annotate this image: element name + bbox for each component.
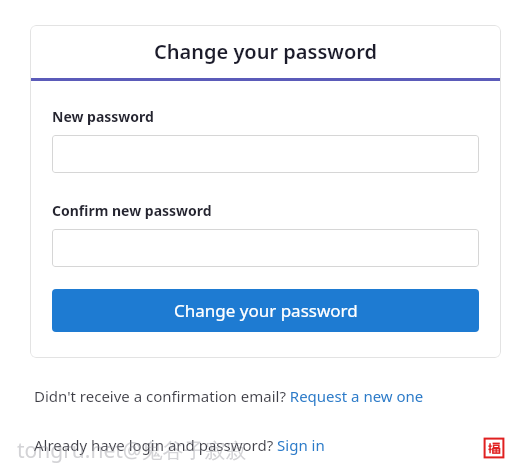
staticText: Confirm new password: [52, 201, 212, 220]
staticText: Change your password: [154, 38, 378, 65]
button[interactable]: Password input: [52, 229, 479, 267]
staticText: Already have login and password? Sign in: [34, 435, 325, 455]
other: Fortune seal: [484, 438, 504, 458]
button[interactable]: Password input: [52, 135, 479, 173]
staticText: Change your password: [174, 299, 358, 322]
staticText: tongru.net@鬼谷子寂寂: [17, 436, 247, 465]
staticText: Didn't receive a confirmation email? Req…: [34, 386, 424, 406]
button[interactable]: Already have login and password? Sign in: [34, 435, 325, 455]
button[interactable]: Didn't receive a confirmation email? Req…: [34, 386, 424, 406]
staticText: New password: [52, 107, 154, 126]
button[interactable]: Change your password: [52, 289, 479, 332]
